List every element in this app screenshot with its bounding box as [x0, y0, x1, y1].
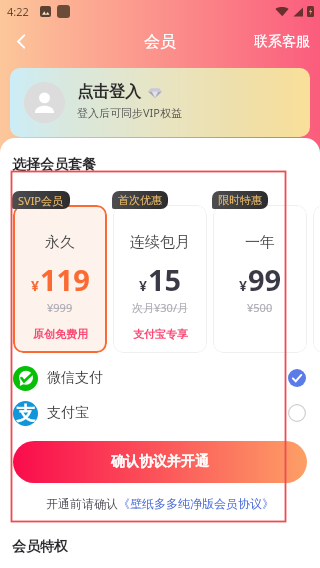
button[interactable]: Back	[4, 24, 38, 58]
button[interactable]	[313, 205, 320, 353]
staticText: 原创免费用	[33, 327, 88, 341]
button[interactable]: 支	[0, 397, 320, 429]
button[interactable]: 联系客服	[243, 24, 320, 58]
staticText: 15	[148, 260, 182, 299]
staticText: 确认协议并开通	[111, 453, 209, 471]
button[interactable]: 确认协议并开通	[13, 441, 307, 483]
staticText: 永久	[45, 233, 75, 252]
staticText: ¥	[239, 276, 248, 295]
staticText: ¥	[139, 276, 148, 295]
staticText: 开通前请确认	[46, 496, 118, 511]
button[interactable]: 一年	[213, 205, 307, 353]
staticText: 连续包月	[130, 233, 190, 252]
staticText: 微信支付	[47, 369, 103, 387]
staticText: 支付宝	[47, 404, 89, 422]
staticText: 会员	[144, 32, 176, 52]
staticText: 119	[40, 260, 90, 299]
staticText: 会员特权	[12, 538, 68, 556]
staticText: ¥500	[247, 300, 273, 315]
staticText: 支付宝专享	[133, 327, 188, 341]
button[interactable]: 点击登入	[10, 68, 310, 137]
button[interactable]: 微信支付	[0, 362, 320, 394]
button[interactable]: 永久	[13, 205, 107, 353]
button[interactable]: 连续包月	[113, 205, 207, 353]
staticText: 支	[16, 402, 35, 426]
button[interactable]: 《壁纸多多纯净版会员协议》	[118, 496, 274, 511]
staticText: 点击登入	[77, 82, 141, 102]
staticText: 首次优惠	[118, 193, 162, 207]
staticText: 4:22	[7, 4, 29, 19]
staticText: 选择会员套餐	[12, 156, 96, 174]
staticText: ¥	[31, 276, 40, 295]
staticText: SVIP会员	[18, 193, 64, 208]
staticText: 登入后可同步VIP权益	[77, 105, 182, 120]
staticText: ¥999	[47, 300, 73, 315]
staticText: 99	[248, 260, 282, 299]
staticText: 联系客服	[254, 33, 310, 51]
staticText: 限时特惠	[218, 193, 262, 207]
staticText: 一年	[245, 233, 275, 252]
staticText: 次月¥30/月	[132, 300, 188, 315]
